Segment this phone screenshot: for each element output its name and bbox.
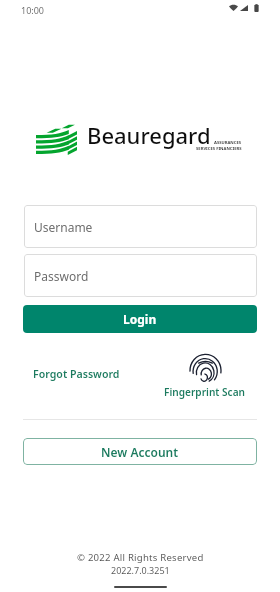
button[interactable]: Login (23, 305, 257, 333)
other: Fingerprint Scan (190, 348, 221, 385)
staticText: Beauregard (87, 120, 211, 150)
staticText: SERVICES FINANCIERS (196, 146, 242, 152)
button[interactable]: Forgot Password (27, 362, 126, 386)
staticText: © 2022 All Rights Reserved (77, 551, 204, 564)
button[interactable]: Username (24, 205, 257, 248)
button[interactable]: Fingerprint Scan (158, 348, 252, 399)
staticText: Fingerprint Scan (164, 385, 246, 399)
button[interactable]: New Account (23, 438, 257, 465)
staticText: Password (34, 268, 89, 284)
staticText: 10:00 (21, 4, 45, 16)
staticText: Login (123, 311, 157, 327)
staticText: ASSURANCES (214, 140, 242, 146)
staticText: 2022.7.0.3251 (111, 564, 170, 576)
button[interactable]: Password (24, 254, 257, 297)
staticText: New Account (101, 444, 179, 460)
staticText: Username (34, 219, 93, 235)
staticText: Forgot Password (33, 367, 120, 381)
